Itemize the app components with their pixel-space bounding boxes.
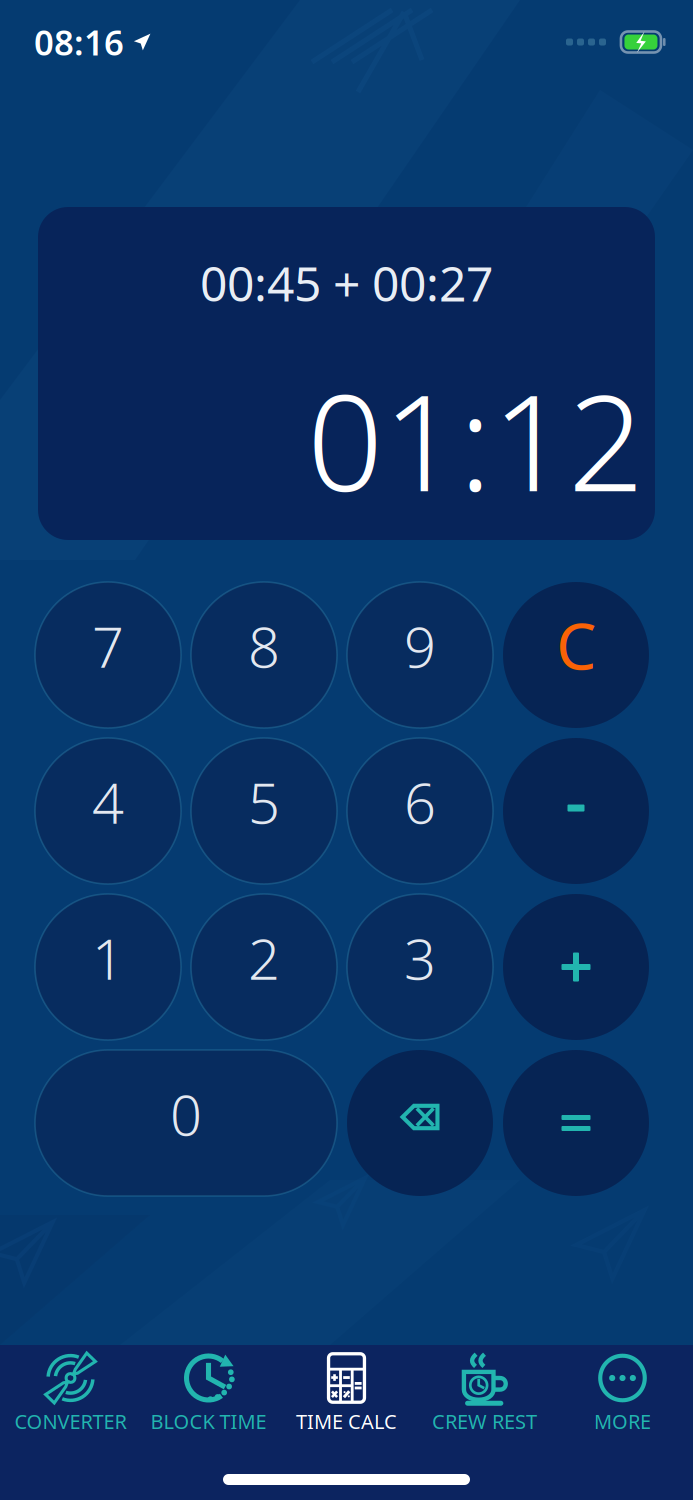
- staticText: 6: [404, 765, 436, 839]
- staticText: CONVERTER: [14, 1408, 126, 1435]
- button[interactable]: BLOCK TIME: [139, 1339, 277, 1500]
- button[interactable]: 8: [191, 582, 337, 728]
- staticText: TIME CALC: [296, 1408, 397, 1435]
- button[interactable]: 1: [35, 894, 181, 1040]
- button[interactable]: Clear: [503, 582, 649, 728]
- button[interactable]: 3: [347, 894, 493, 1040]
- button[interactable]: 2: [191, 894, 337, 1040]
- staticText: MORE: [594, 1408, 651, 1435]
- button[interactable]: TIME CALC: [277, 1339, 415, 1500]
- staticText: 7: [92, 609, 124, 683]
- button[interactable]: 9: [347, 582, 493, 728]
- staticText: CREW REST: [432, 1408, 537, 1435]
- staticText: 00:45 + 00:27: [200, 251, 493, 315]
- staticText: C: [556, 602, 596, 687]
- staticText: 8: [248, 609, 280, 683]
- staticText: 2: [248, 921, 280, 995]
- button[interactable]: CONVERTER: [1, 1339, 139, 1500]
- button[interactable]: 0: [35, 1050, 337, 1196]
- button[interactable]: Plus: [503, 894, 649, 1040]
- staticText: BLOCK TIME: [150, 1408, 266, 1435]
- button[interactable]: Equals: [503, 1050, 649, 1196]
- staticText: 0: [170, 1077, 202, 1151]
- staticText: 4: [92, 765, 124, 839]
- button[interactable]: 4: [35, 738, 181, 884]
- button[interactable]: 6: [347, 738, 493, 884]
- staticText: 01:12: [307, 351, 644, 528]
- staticText: 1: [92, 921, 124, 995]
- button[interactable]: 5: [191, 738, 337, 884]
- button[interactable]: Delete: [347, 1050, 493, 1196]
- staticText: 3: [404, 921, 436, 995]
- staticText: 5: [248, 765, 280, 839]
- button[interactable]: Minus: [503, 738, 649, 884]
- staticText: 9: [404, 609, 436, 683]
- button[interactable]: MORE: [553, 1339, 691, 1500]
- button[interactable]: CREW REST: [415, 1339, 553, 1500]
- staticText: 08:16: [34, 19, 124, 65]
- button[interactable]: 7: [35, 582, 181, 728]
